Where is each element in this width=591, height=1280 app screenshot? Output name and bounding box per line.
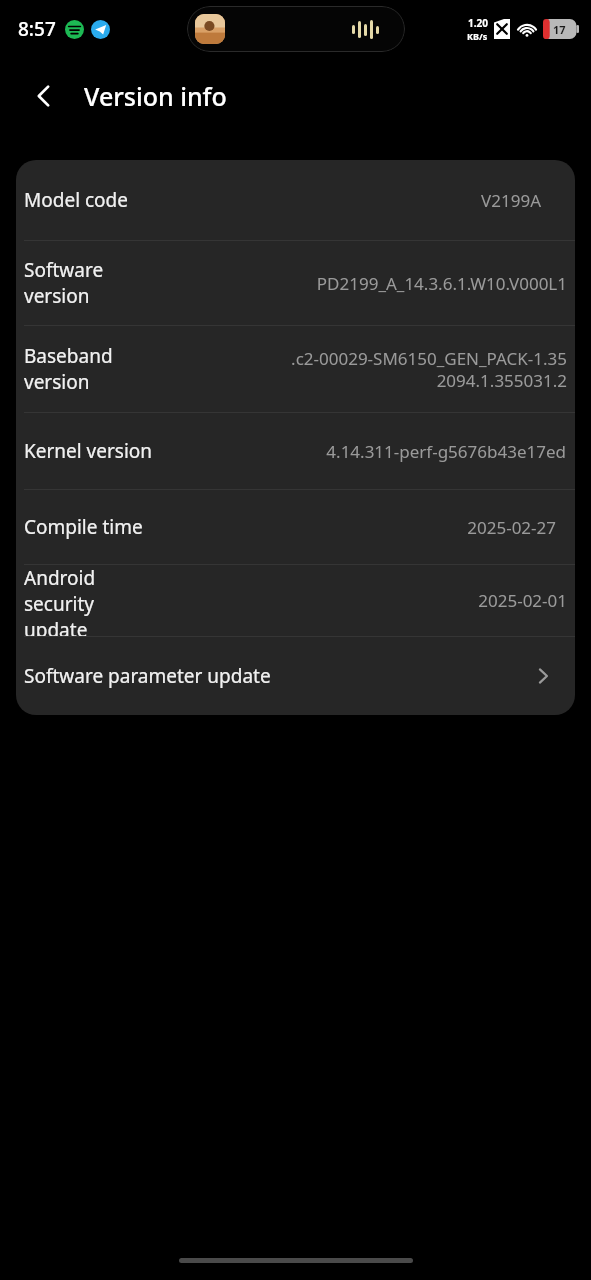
staticText: .c2-00029-SM6150_GEN_PACK-1.352094.1.355…	[283, 347, 567, 392]
button[interactable]: Kernel version	[16, 413, 575, 489]
staticText: Software version	[24, 257, 154, 309]
staticText: Model code	[24, 187, 128, 213]
staticText: Kernel version	[24, 438, 153, 464]
button[interactable]: Back	[18, 70, 70, 122]
staticText: PD2199_A_14.3.6.1.W10.V000L1	[283, 272, 567, 295]
staticText: Software parameter update	[24, 663, 271, 689]
staticText: 17	[553, 22, 566, 37]
staticText: 1.20	[468, 16, 488, 30]
staticText: 2025-02-01	[283, 589, 567, 612]
button[interactable]: Software parameter update	[16, 637, 575, 715]
staticText: Version info	[84, 79, 227, 113]
button[interactable]: Compile time	[16, 490, 575, 564]
button[interactable]: Model code	[16, 160, 575, 240]
staticText: KB/s	[467, 30, 488, 42]
button[interactable]: Software version	[16, 241, 575, 325]
button[interactable]: Baseband version	[16, 326, 575, 412]
staticText: 2025-02-27	[272, 516, 556, 539]
staticText: 8:57	[18, 16, 56, 42]
staticText: Compile time	[24, 514, 143, 540]
staticText: Android security update	[24, 565, 154, 636]
button[interactable]: Android security update	[16, 565, 575, 636]
staticText: Baseband version	[24, 343, 154, 395]
staticText: V2199A	[257, 189, 541, 212]
staticText: 4.14.311-perf-g5676b43e17ed	[282, 440, 566, 463]
